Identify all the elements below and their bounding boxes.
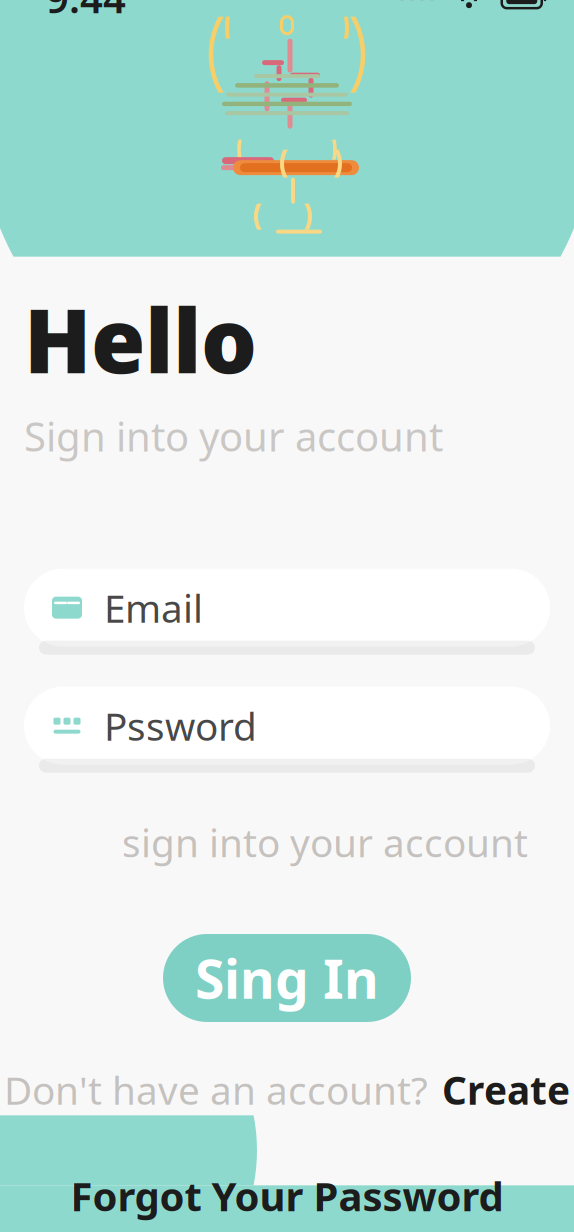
staticText: 9:44 (46, 0, 126, 24)
staticText: Forgot Your Password (70, 1169, 503, 1222)
staticText: Don't have an account? (4, 1064, 428, 1115)
staticText: Sign into your account (24, 409, 443, 463)
button[interactable]: Pssword (24, 687, 550, 765)
button[interactable]: Forgot Your Password (50, 1161, 523, 1230)
button[interactable]: Sing In (163, 934, 411, 1022)
button[interactable]: Create (442, 1064, 570, 1115)
staticText: Sing In (195, 943, 379, 1013)
staticText: Email (104, 582, 203, 633)
staticText: sign into your account (122, 817, 528, 868)
staticText: Pssword (104, 700, 257, 751)
staticText: Hello (24, 281, 257, 398)
button[interactable]: Email (24, 569, 550, 647)
button[interactable]: sign into your account (122, 817, 528, 868)
staticText: Create (442, 1064, 570, 1115)
